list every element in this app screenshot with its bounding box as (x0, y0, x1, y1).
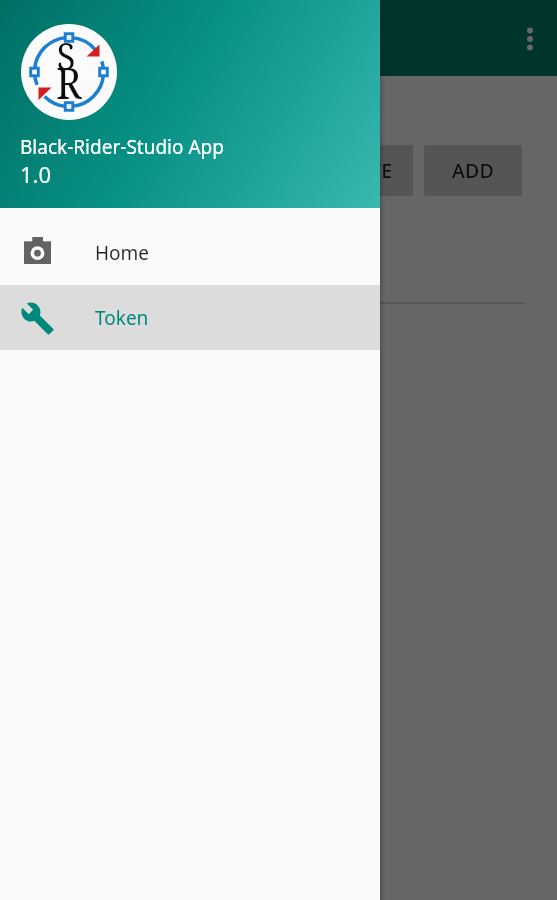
staticText: Black-Rider-Studio App (20, 134, 224, 160)
staticText: SAVE (346, 157, 393, 184)
staticText: R (56, 53, 82, 112)
staticText: Home (95, 240, 150, 266)
button[interactable]: ADD (424, 145, 522, 196)
button[interactable]: SAVE (315, 145, 413, 196)
staticText: 1.0 (20, 159, 52, 189)
staticText: Token (95, 305, 149, 331)
staticText: S (57, 29, 76, 81)
button[interactable]: More options (508, 17, 552, 61)
staticText: ADD (452, 157, 494, 184)
button[interactable]: Token (0, 285, 380, 350)
button[interactable]: Home (0, 220, 380, 285)
